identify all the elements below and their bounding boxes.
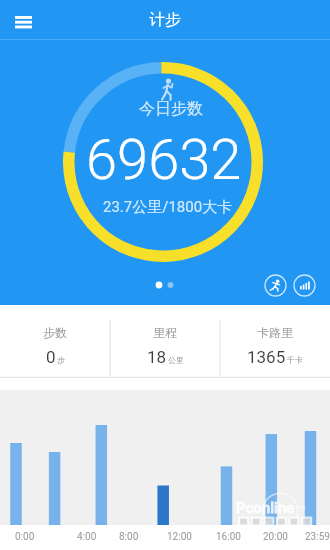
staticText: 18 [147, 347, 167, 367]
staticText: 1365 [247, 347, 286, 367]
button[interactable] [264, 274, 287, 297]
staticText: 16:00 [216, 531, 241, 543]
staticText: 步数 [43, 325, 67, 340]
staticText: 0:00 [15, 531, 35, 543]
staticText: 23:59 [305, 531, 330, 543]
button[interactable]: 里程 [110, 305, 220, 378]
staticText: ... [298, 500, 306, 511]
staticText: 8:00 [119, 531, 139, 543]
staticText: 步 [57, 355, 65, 365]
staticText: 0 [46, 347, 56, 367]
staticText: Pconline [236, 499, 295, 517]
staticText: 20:00 [263, 531, 288, 543]
staticText: 12:00 [167, 531, 192, 543]
button[interactable] [11, 12, 35, 33]
staticText: 里程 [153, 325, 177, 340]
staticText: 23.7公里/1800大卡 [103, 198, 233, 217]
staticText: 卡路里 [257, 325, 293, 340]
staticText: 千卡 [287, 355, 303, 365]
button[interactable]: 步数 [0, 305, 110, 378]
staticText: 计步 [149, 10, 181, 30]
staticText: 今日步数 [139, 99, 203, 119]
button[interactable] [293, 274, 316, 297]
staticText: 69632 [86, 127, 242, 193]
staticText: 4:00 [77, 531, 97, 543]
staticText: 公里 [168, 355, 184, 365]
button[interactable]: 卡路里 [220, 305, 330, 378]
